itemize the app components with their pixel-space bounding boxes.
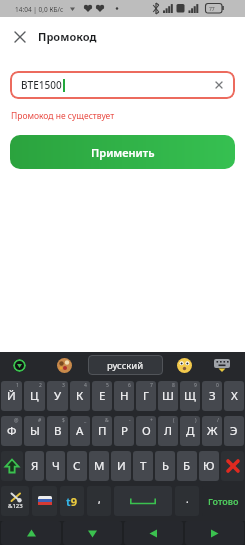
button[interactable]: А: [70, 416, 90, 446]
button[interactable]: Применить: [10, 135, 235, 169]
staticText: 1: [16, 382, 19, 389]
button[interactable]: [114, 486, 172, 516]
staticText: Щ: [184, 388, 196, 404]
button[interactable]: BTE1500: [10, 71, 235, 99]
staticText: О: [142, 423, 151, 439]
button[interactable]: [1, 451, 23, 481]
button[interactable]: [63, 521, 122, 545]
staticText: Промокод: [38, 29, 97, 44]
button[interactable]: Ю: [199, 451, 219, 481]
staticText: 5: [106, 382, 109, 389]
button[interactable]: Д: [180, 416, 200, 446]
button[interactable]: Н: [114, 381, 134, 411]
button[interactable]: Ф: [1, 416, 22, 446]
staticText: /: [217, 417, 219, 424]
button[interactable]: Ы: [24, 416, 45, 446]
button[interactable]: О: [136, 416, 156, 446]
button[interactable]: В: [47, 416, 68, 446]
button[interactable]: Л: [158, 416, 178, 446]
staticText: 7: [150, 382, 153, 389]
staticText: Л: [164, 423, 173, 439]
staticText: Ю: [203, 458, 215, 474]
staticText: 6: [128, 382, 131, 389]
staticText: (: [173, 417, 175, 424]
staticText: Ш: [162, 388, 174, 404]
staticText: Промокод не существует: [11, 110, 115, 122]
button[interactable]: Т: [133, 451, 153, 481]
staticText: Ч: [52, 458, 60, 474]
button[interactable]: русский: [88, 355, 163, 375]
staticText: &123: [8, 502, 23, 510]
button[interactable]: Э: [224, 416, 244, 446]
staticText: Ф: [7, 423, 17, 439]
staticText: 9: [194, 382, 197, 389]
button[interactable]: [32, 486, 57, 516]
staticText: И: [117, 458, 126, 474]
button[interactable]: М: [89, 451, 109, 481]
button[interactable]: [11, 28, 29, 46]
button[interactable]: [13, 359, 26, 372]
button[interactable]: Й: [1, 381, 22, 411]
staticText: .: [186, 492, 189, 506]
button[interactable]: t9: [60, 486, 84, 516]
button[interactable]: [185, 521, 244, 545]
staticText: 0: [216, 382, 219, 389]
staticText: 4: [84, 382, 87, 389]
staticText: С: [73, 458, 81, 474]
staticText: М: [94, 458, 105, 474]
button[interactable]: К: [70, 381, 90, 411]
staticText: t9: [66, 494, 78, 509]
button[interactable]: П: [92, 416, 112, 446]
button[interactable]: [124, 521, 183, 545]
staticText: Д: [186, 423, 195, 439]
staticText: Х: [231, 388, 238, 404]
staticText: Применить: [91, 145, 155, 160]
button[interactable]: [177, 358, 192, 373]
button[interactable]: Г: [136, 381, 156, 411]
button[interactable]: Е: [92, 381, 112, 411]
button[interactable]: [57, 358, 72, 373]
button[interactable]: И: [111, 451, 131, 481]
staticText: Й: [7, 388, 16, 404]
button[interactable]: Ц: [24, 381, 45, 411]
staticText: @: [14, 417, 19, 424]
staticText: #: [38, 417, 42, 424]
staticText: ,: [98, 492, 101, 506]
staticText: Г: [143, 388, 149, 404]
button[interactable]: Ч: [46, 451, 65, 481]
button[interactable]: Ь: [155, 451, 175, 481]
button[interactable]: [1, 521, 61, 545]
button[interactable]: С: [67, 451, 87, 481]
button[interactable]: .: [175, 486, 199, 516]
button[interactable]: Б: [177, 451, 197, 481]
button[interactable]: Я: [25, 451, 44, 481]
staticText: 77: [209, 6, 215, 13]
staticText: 2: [39, 382, 42, 389]
button[interactable]: З: [202, 381, 222, 411]
staticText: Р: [121, 423, 128, 439]
button[interactable]: Щ: [180, 381, 200, 411]
staticText: &: [105, 417, 109, 424]
button[interactable]: У: [47, 381, 68, 411]
staticText: З: [209, 388, 216, 404]
button[interactable]: [221, 451, 244, 481]
button[interactable]: [214, 359, 230, 372]
staticText: _: [84, 417, 87, 424]
staticText: А: [76, 423, 84, 439]
staticText: У: [54, 388, 62, 404]
button[interactable]: Р: [114, 416, 134, 446]
staticText: К: [76, 388, 84, 404]
staticText: Ж: [207, 423, 218, 439]
staticText: Э: [230, 423, 238, 439]
staticText: -: [129, 417, 131, 424]
staticText: BTE1500: [21, 78, 62, 92]
staticText: Ц: [30, 388, 39, 404]
staticText: 3: [62, 382, 65, 389]
button[interactable]: Ж: [202, 416, 222, 446]
button[interactable]: &123: [1, 486, 29, 516]
button[interactable]: Ш: [158, 381, 178, 411]
button[interactable]: Готово: [202, 486, 244, 516]
button[interactable]: ,: [87, 486, 111, 516]
button[interactable]: Х: [224, 381, 244, 411]
staticText: Ы: [30, 423, 40, 439]
